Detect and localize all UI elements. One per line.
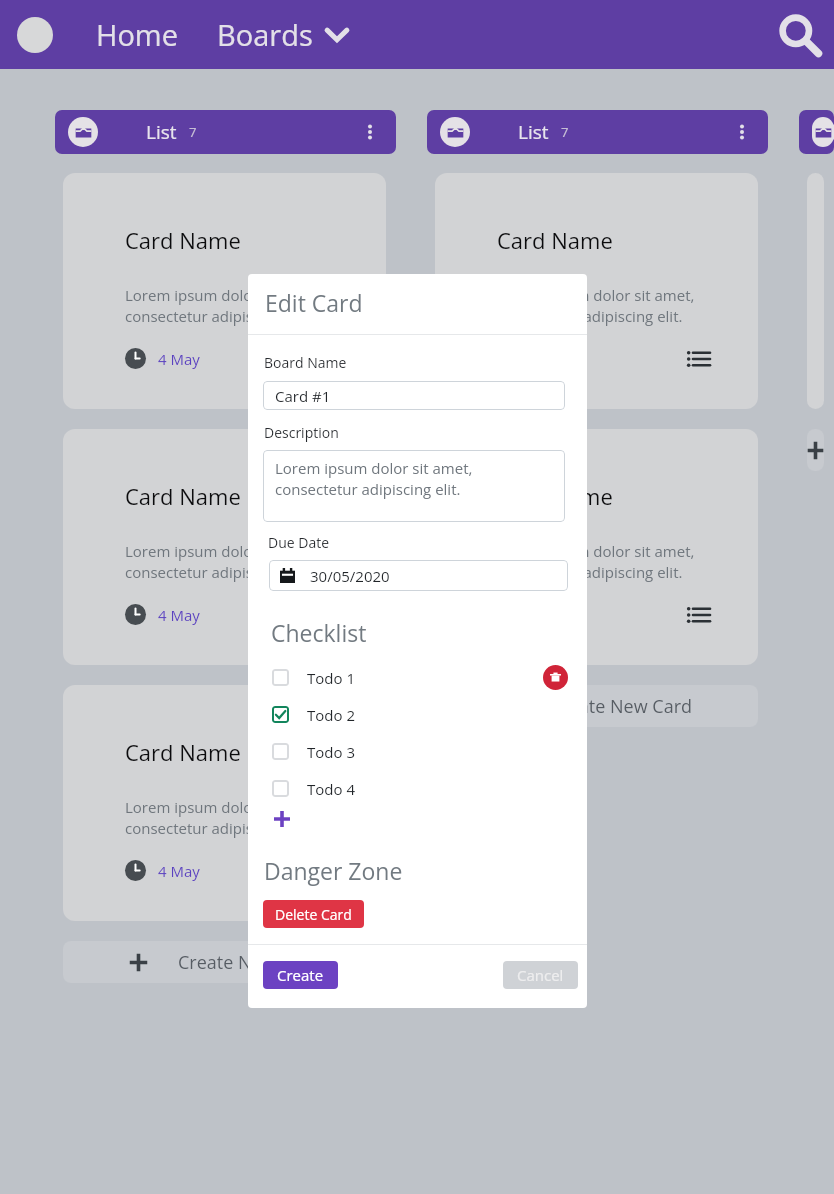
staticText: Description bbox=[264, 423, 339, 442]
button[interactable]: List bbox=[55, 110, 396, 154]
staticText: Card Name bbox=[125, 225, 241, 255]
button[interactable]: List bbox=[427, 110, 768, 154]
button[interactable]: Profile bbox=[17, 17, 53, 53]
button[interactable]: Create New Card bbox=[807, 429, 824, 471]
staticText: Lorem ipsum dolor sit amet, consectetur … bbox=[125, 541, 323, 583]
button[interactable]: Cancel bbox=[503, 961, 578, 989]
staticText: Card Name bbox=[125, 481, 241, 511]
button[interactable]: Create New Card bbox=[63, 941, 386, 983]
staticText: Board Name bbox=[264, 353, 347, 372]
staticText: Danger Zone bbox=[264, 855, 403, 886]
staticText: Lorem ipsum dolor sit amet, consectetur … bbox=[125, 797, 323, 839]
button[interactable]: Card #1 bbox=[263, 381, 565, 410]
button[interactable]: List options bbox=[723, 110, 761, 154]
staticText: 30/05/2020 bbox=[310, 566, 390, 586]
button[interactable]: Card Name bbox=[63, 173, 386, 409]
button[interactable]: Card Name bbox=[435, 173, 758, 409]
staticText: List bbox=[146, 119, 177, 145]
button[interactable]: List bbox=[799, 110, 834, 154]
button[interactable]: Card Name bbox=[63, 685, 386, 921]
staticText: Create New Card bbox=[550, 694, 692, 719]
staticText: 7 bbox=[561, 123, 569, 141]
staticText: 4 May bbox=[158, 605, 200, 625]
staticText: Due Date bbox=[268, 533, 330, 552]
button[interactable]: Todo 1 bbox=[248, 659, 587, 696]
button[interactable]: 30/05/2020 bbox=[269, 560, 568, 591]
staticText: Boards bbox=[217, 15, 313, 54]
staticText: Todo 4 bbox=[307, 779, 355, 799]
button[interactable]: Lorem ipsum dolor sit amet, consectetur … bbox=[263, 450, 565, 522]
button[interactable]: Search bbox=[774, 9, 826, 61]
button[interactable]: Todo 3 bbox=[248, 733, 587, 770]
staticText: 7 bbox=[189, 123, 197, 141]
button[interactable]: Boards bbox=[217, 15, 348, 54]
button[interactable]: Todo 2 bbox=[248, 696, 587, 733]
staticText: Todo 1 bbox=[307, 668, 355, 688]
button[interactable]: Edit Card bbox=[265, 274, 587, 334]
button[interactable]: Create New Card bbox=[435, 685, 758, 727]
button[interactable]: Add checklist item bbox=[270, 807, 294, 831]
button[interactable]: Todo 4 bbox=[248, 770, 587, 807]
button[interactable]: Card Name bbox=[435, 429, 758, 665]
staticText: Checklist bbox=[271, 617, 367, 648]
button[interactable]: Delete Card bbox=[263, 900, 364, 928]
staticText: 4 May bbox=[158, 861, 200, 881]
staticText: Lorem ipsum dolor sit amet, consectetur … bbox=[497, 285, 695, 327]
staticText: Card Name bbox=[125, 737, 241, 767]
staticText: Card Name bbox=[497, 225, 613, 255]
button[interactable]: List options bbox=[351, 110, 389, 154]
staticText: 4 May bbox=[158, 349, 200, 369]
staticText: Create bbox=[277, 965, 324, 985]
staticText: Lorem ipsum dolor sit amet, consectetur … bbox=[125, 285, 323, 327]
staticText: Lorem ipsum dolor sit amet, consectetur … bbox=[497, 541, 695, 583]
staticText: Lorem ipsum dolor sit amet, consectetur … bbox=[275, 458, 473, 500]
button[interactable]: Home bbox=[96, 15, 178, 54]
staticText: Card #1 bbox=[275, 386, 331, 406]
staticText: Cancel bbox=[517, 965, 564, 985]
staticText: Create New Card bbox=[178, 950, 320, 975]
staticText: List bbox=[518, 119, 549, 145]
staticText: Card Name bbox=[497, 481, 613, 511]
button[interactable]: Card Name bbox=[63, 429, 386, 665]
staticText: Todo 3 bbox=[307, 742, 355, 762]
button[interactable]: Create bbox=[263, 961, 338, 989]
staticText: Edit Card bbox=[265, 287, 363, 318]
button[interactable]: Delete checklist item bbox=[543, 665, 568, 690]
staticText: Todo 2 bbox=[307, 705, 355, 725]
staticText: Delete Card bbox=[275, 905, 352, 924]
